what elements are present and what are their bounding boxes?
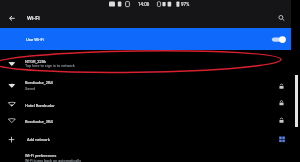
button[interactable] [0,148,291,162]
staticText: Saved [25,86,300,90]
staticText: Borobudur_2B4 [25,80,300,85]
staticText: Use Wi-Fi [26,37,300,42]
staticText: Hotel Borobudur [25,103,300,108]
staticText: Wi-Fi [27,15,300,22]
staticText: Borobudur_3B4 [25,119,300,124]
button[interactable] [0,28,291,50]
button[interactable]: Navigate up [4,11,20,27]
button[interactable] [0,95,291,112]
staticText: Tap here to sign in to network [25,63,300,67]
staticText: NTGR_228k [25,59,300,64]
button[interactable] [0,50,291,72]
button[interactable] [0,112,291,129]
staticText: 14:06 [138,2,300,7]
staticText: Add network [27,137,300,142]
staticText: Wi-Fi turns back on automatically [25,158,300,162]
staticText: 97% [181,2,300,7]
button[interactable] [0,130,291,148]
button[interactable] [0,72,291,94]
button[interactable]: Search [274,11,288,25]
staticText: Wi-Fi preferences [25,153,300,158]
